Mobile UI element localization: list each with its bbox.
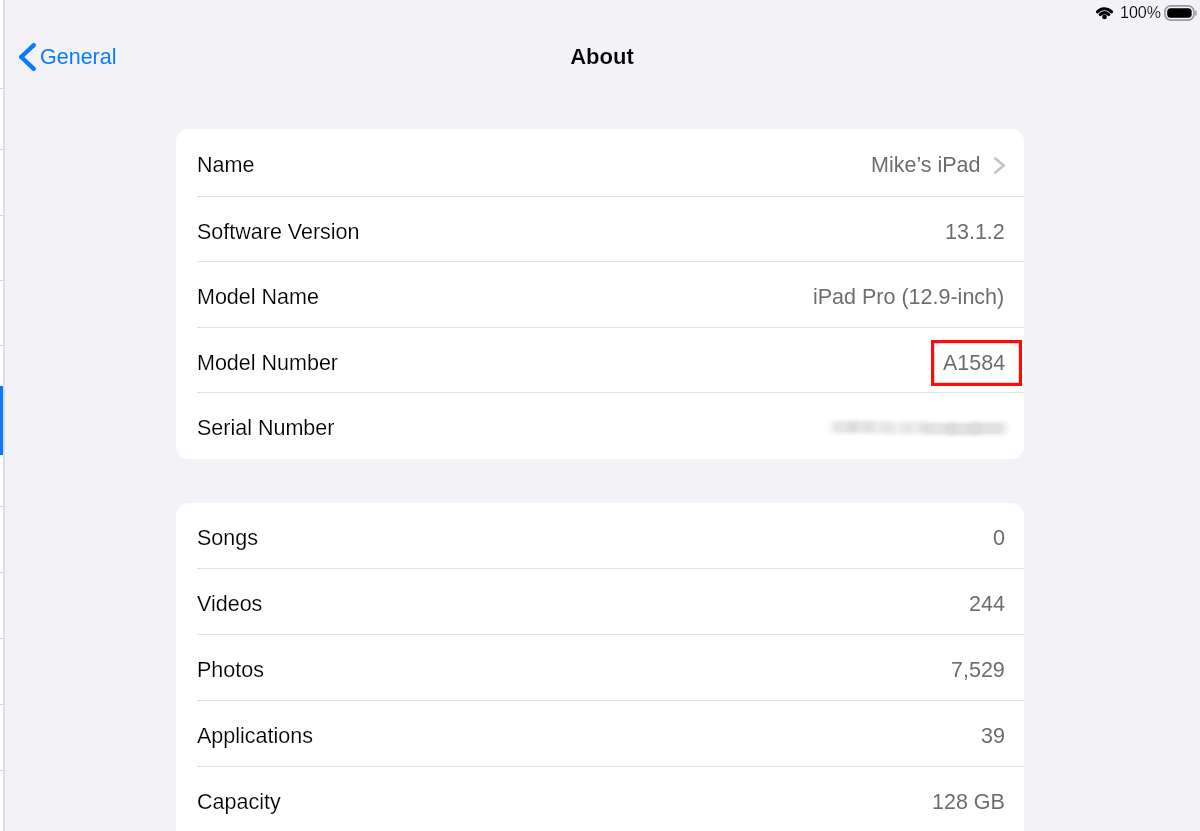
other: Open name settings (994, 157, 1005, 174)
staticText: Model Name (197, 285, 319, 309)
button[interactable]: Videos (176, 569, 1024, 635)
staticText: 128 GB (932, 790, 1005, 814)
button[interactable]: Serial Number (176, 393, 1024, 459)
staticText: General (40, 45, 117, 69)
staticText: About (570, 44, 634, 69)
button[interactable]: General (19, 43, 117, 71)
staticText: iPad Pro (12.9-inch) (813, 285, 1005, 309)
button[interactable]: Applications (176, 701, 1024, 767)
staticText: 244 (969, 592, 1005, 616)
staticText: Songs (197, 526, 258, 550)
staticText: 13.1.2 (945, 220, 1005, 244)
staticText: Videos (197, 592, 263, 616)
staticText: 7,529 (951, 658, 1005, 682)
button[interactable]: Photos (176, 635, 1024, 701)
staticText: Name (197, 153, 255, 177)
button[interactable]: Model Number (176, 328, 1024, 393)
staticText: Software Version (197, 220, 360, 244)
button[interactable]: Model Name (176, 262, 1024, 328)
staticText: Photos (197, 658, 264, 682)
staticText: Applications (197, 724, 313, 748)
staticText: Model Number (197, 351, 338, 375)
other: Wi-Fi connected (1095, 4, 1114, 18)
button[interactable]: Software Version (176, 197, 1024, 262)
other: Battery 100 percent (1164, 5, 1197, 21)
button[interactable]: Name (176, 129, 1024, 197)
staticText: Serial Number (197, 416, 335, 440)
staticText: Capacity (197, 790, 281, 814)
staticText: 0 (993, 526, 1005, 550)
staticText: 39 (981, 724, 1005, 748)
staticText: 100% (1120, 4, 1161, 22)
button[interactable]: Settings list (0, 0, 3, 831)
button[interactable]: Songs (176, 503, 1024, 569)
staticText: A1584 (943, 351, 1006, 375)
staticText: Mike’s iPad (871, 153, 981, 177)
button[interactable]: Capacity (176, 767, 1024, 831)
